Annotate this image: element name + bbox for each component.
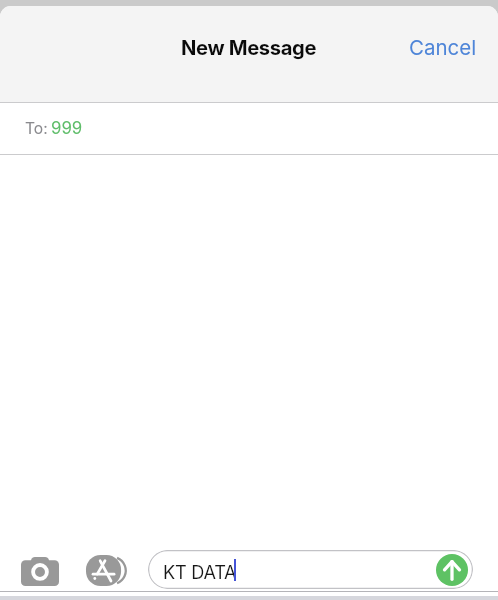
- button[interactable]: App Store: [86, 555, 127, 586]
- button[interactable]: KT DATA: [148, 550, 473, 589]
- staticText: To:: [25, 119, 48, 138]
- staticText: New Message: [181, 35, 317, 59]
- staticText: KT DATA: [163, 561, 237, 583]
- button[interactable]: Camera: [21, 557, 59, 586]
- button[interactable]: To:: [25, 118, 83, 138]
- button[interactable]: Send: [436, 554, 468, 586]
- staticText: 999: [51, 118, 83, 138]
- button[interactable]: Cancel: [385, 27, 498, 68]
- staticText: Cancel: [409, 35, 477, 60]
